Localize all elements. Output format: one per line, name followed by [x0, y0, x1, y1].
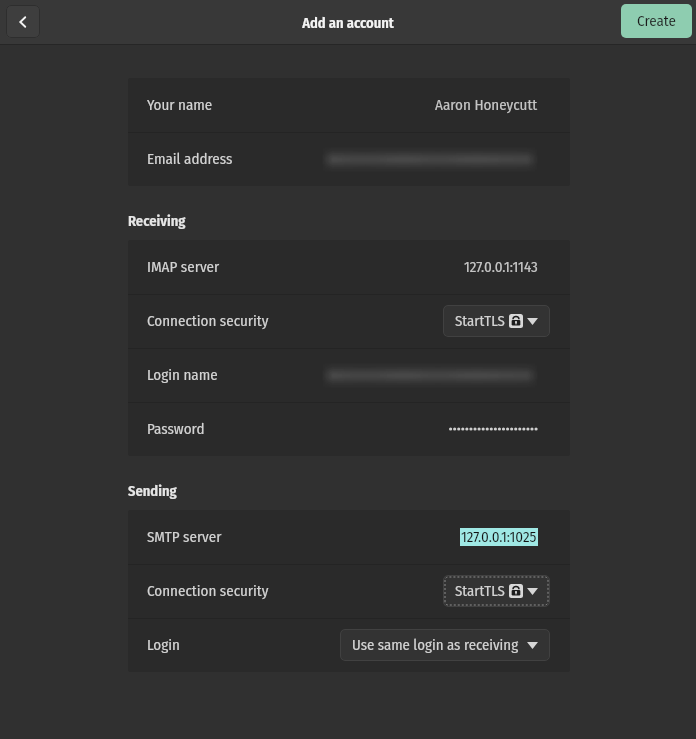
button[interactable]: Your name: [128, 78, 570, 132]
button[interactable]: Use same login as receiving: [340, 629, 550, 661]
button[interactable]: Login: [128, 618, 570, 672]
staticText: Add an account: [302, 14, 394, 31]
staticText: Sending: [128, 482, 177, 499]
button[interactable]: IMAP server: [128, 240, 570, 294]
staticText: Receiving: [128, 212, 186, 229]
staticText: SMTP server: [147, 528, 222, 546]
button[interactable]: Email address: [128, 132, 570, 186]
button[interactable]: Create: [621, 4, 692, 38]
button[interactable]: Back: [6, 5, 40, 38]
staticText: Create: [637, 12, 676, 30]
button[interactable]: Login name: [128, 348, 570, 402]
staticText: IMAP server: [147, 258, 220, 276]
button[interactable]: StartTLS: [443, 305, 550, 337]
button[interactable]: StartTLS: [443, 575, 550, 607]
staticText: StartTLS: [455, 582, 505, 600]
staticText: Aaron Honeycutt: [435, 96, 538, 114]
button[interactable]: Password: [128, 402, 570, 456]
staticText: Connection security: [147, 312, 269, 330]
staticText: Login: [147, 636, 180, 654]
staticText: Password: [147, 420, 205, 438]
staticText: Login name: [147, 366, 218, 384]
staticText: 127.0.0.1:1143: [464, 258, 538, 276]
staticText: Email address: [147, 150, 233, 168]
staticText: 127.0.0.1:1025: [461, 528, 537, 546]
staticText: Connection security: [147, 582, 269, 600]
staticText: StartTLS: [455, 312, 505, 330]
staticText: Your name: [147, 96, 213, 114]
button[interactable]: Connection security: [128, 294, 570, 348]
button[interactable]: Connection security: [128, 564, 570, 618]
staticText: Use same login as receiving: [352, 636, 519, 654]
button[interactable]: SMTP server: [128, 510, 570, 564]
